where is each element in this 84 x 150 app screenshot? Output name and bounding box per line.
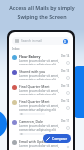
staticText: Shared with you xyxy=(19,69,46,74)
button[interactable]: Star xyxy=(66,146,70,148)
button[interactable]: Finals Review.pdf xyxy=(19,113,45,115)
button[interactable]: Star xyxy=(66,106,70,110)
button[interactable]: Star xyxy=(66,91,70,95)
button[interactable]: Account xyxy=(63,39,68,44)
staticText: Final Quarter Meet xyxy=(19,99,50,104)
button[interactable]: Email with Update xyxy=(9,137,73,150)
staticText: Dec 13 xyxy=(61,69,70,73)
button[interactable]: Compose xyxy=(43,134,71,143)
button[interactable]: Cameron, Dale xyxy=(9,117,73,137)
staticText: Compose xyxy=(52,136,68,141)
staticText: Dec 13 xyxy=(61,84,70,88)
staticText: Dec 10 xyxy=(61,139,70,143)
staticText: Lorem ipsum dolor sit amet, consectetur … xyxy=(19,89,60,95)
staticText: D xyxy=(64,40,67,44)
button[interactable]: Star xyxy=(66,76,70,80)
staticText: Flour Bakery xyxy=(19,54,41,59)
staticText: Lorem ipsum dolor sit amet, consectetur … xyxy=(19,104,60,112)
staticText: Email with Update xyxy=(19,139,49,144)
staticText: Dec 11 xyxy=(61,119,70,123)
button[interactable]: Final Quarter Meet xyxy=(9,82,73,97)
button[interactable]: Star xyxy=(66,126,70,130)
staticText: Swiping the Screen xyxy=(17,13,67,20)
button[interactable]: Search in mail xyxy=(12,37,70,45)
staticText: Inbox xyxy=(12,47,20,51)
staticText: Dec 14 xyxy=(61,54,70,58)
button[interactable]: Finals Review.pdf xyxy=(19,133,45,135)
staticText: Access all Mails by simply xyxy=(9,4,75,11)
button[interactable]: Flour Bakery xyxy=(9,52,73,67)
button[interactable]: Star xyxy=(66,61,70,65)
staticText: Lorem ipsum dolor sit amet, consectetur … xyxy=(19,144,60,148)
staticText: Dec 12 xyxy=(61,99,70,103)
staticText: Lorem ipsum dolor sit amet, consectetur … xyxy=(19,59,60,65)
staticText: Search in mail xyxy=(21,39,42,43)
staticText: Final Quarter Meet xyxy=(19,84,50,89)
staticText: Lorem ipsum dolor sit amet, consectetur … xyxy=(19,124,60,132)
button[interactable]: Final Quarter Meet xyxy=(9,97,73,117)
staticText: Cameron, Dale xyxy=(19,119,43,124)
button[interactable]: Shared with you xyxy=(9,67,73,82)
staticText: Lorem ipsum dolor sit amet, consectetur … xyxy=(19,74,60,80)
